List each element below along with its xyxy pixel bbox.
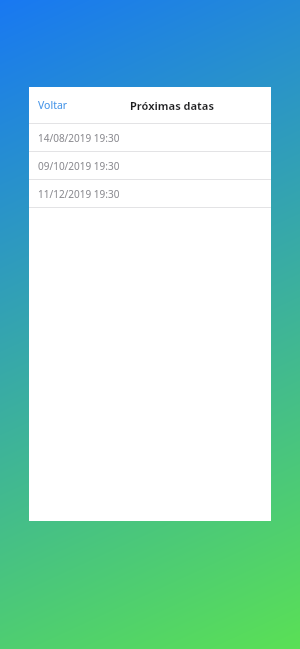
staticText: 09/10/2019 19:30 bbox=[38, 159, 120, 173]
staticText: Voltar bbox=[38, 98, 68, 112]
staticText: 14/08/2019 19:30 bbox=[38, 131, 120, 145]
button[interactable]: 09/10/2019 19:30 bbox=[29, 152, 271, 179]
staticText: Próximas datas bbox=[112, 98, 232, 113]
button[interactable]: 14/08/2019 19:30 bbox=[29, 124, 271, 151]
button[interactable]: 11/12/2019 19:30 bbox=[29, 180, 271, 207]
staticText: 11/12/2019 19:30 bbox=[38, 187, 120, 201]
button[interactable]: Voltar bbox=[29, 92, 76, 118]
